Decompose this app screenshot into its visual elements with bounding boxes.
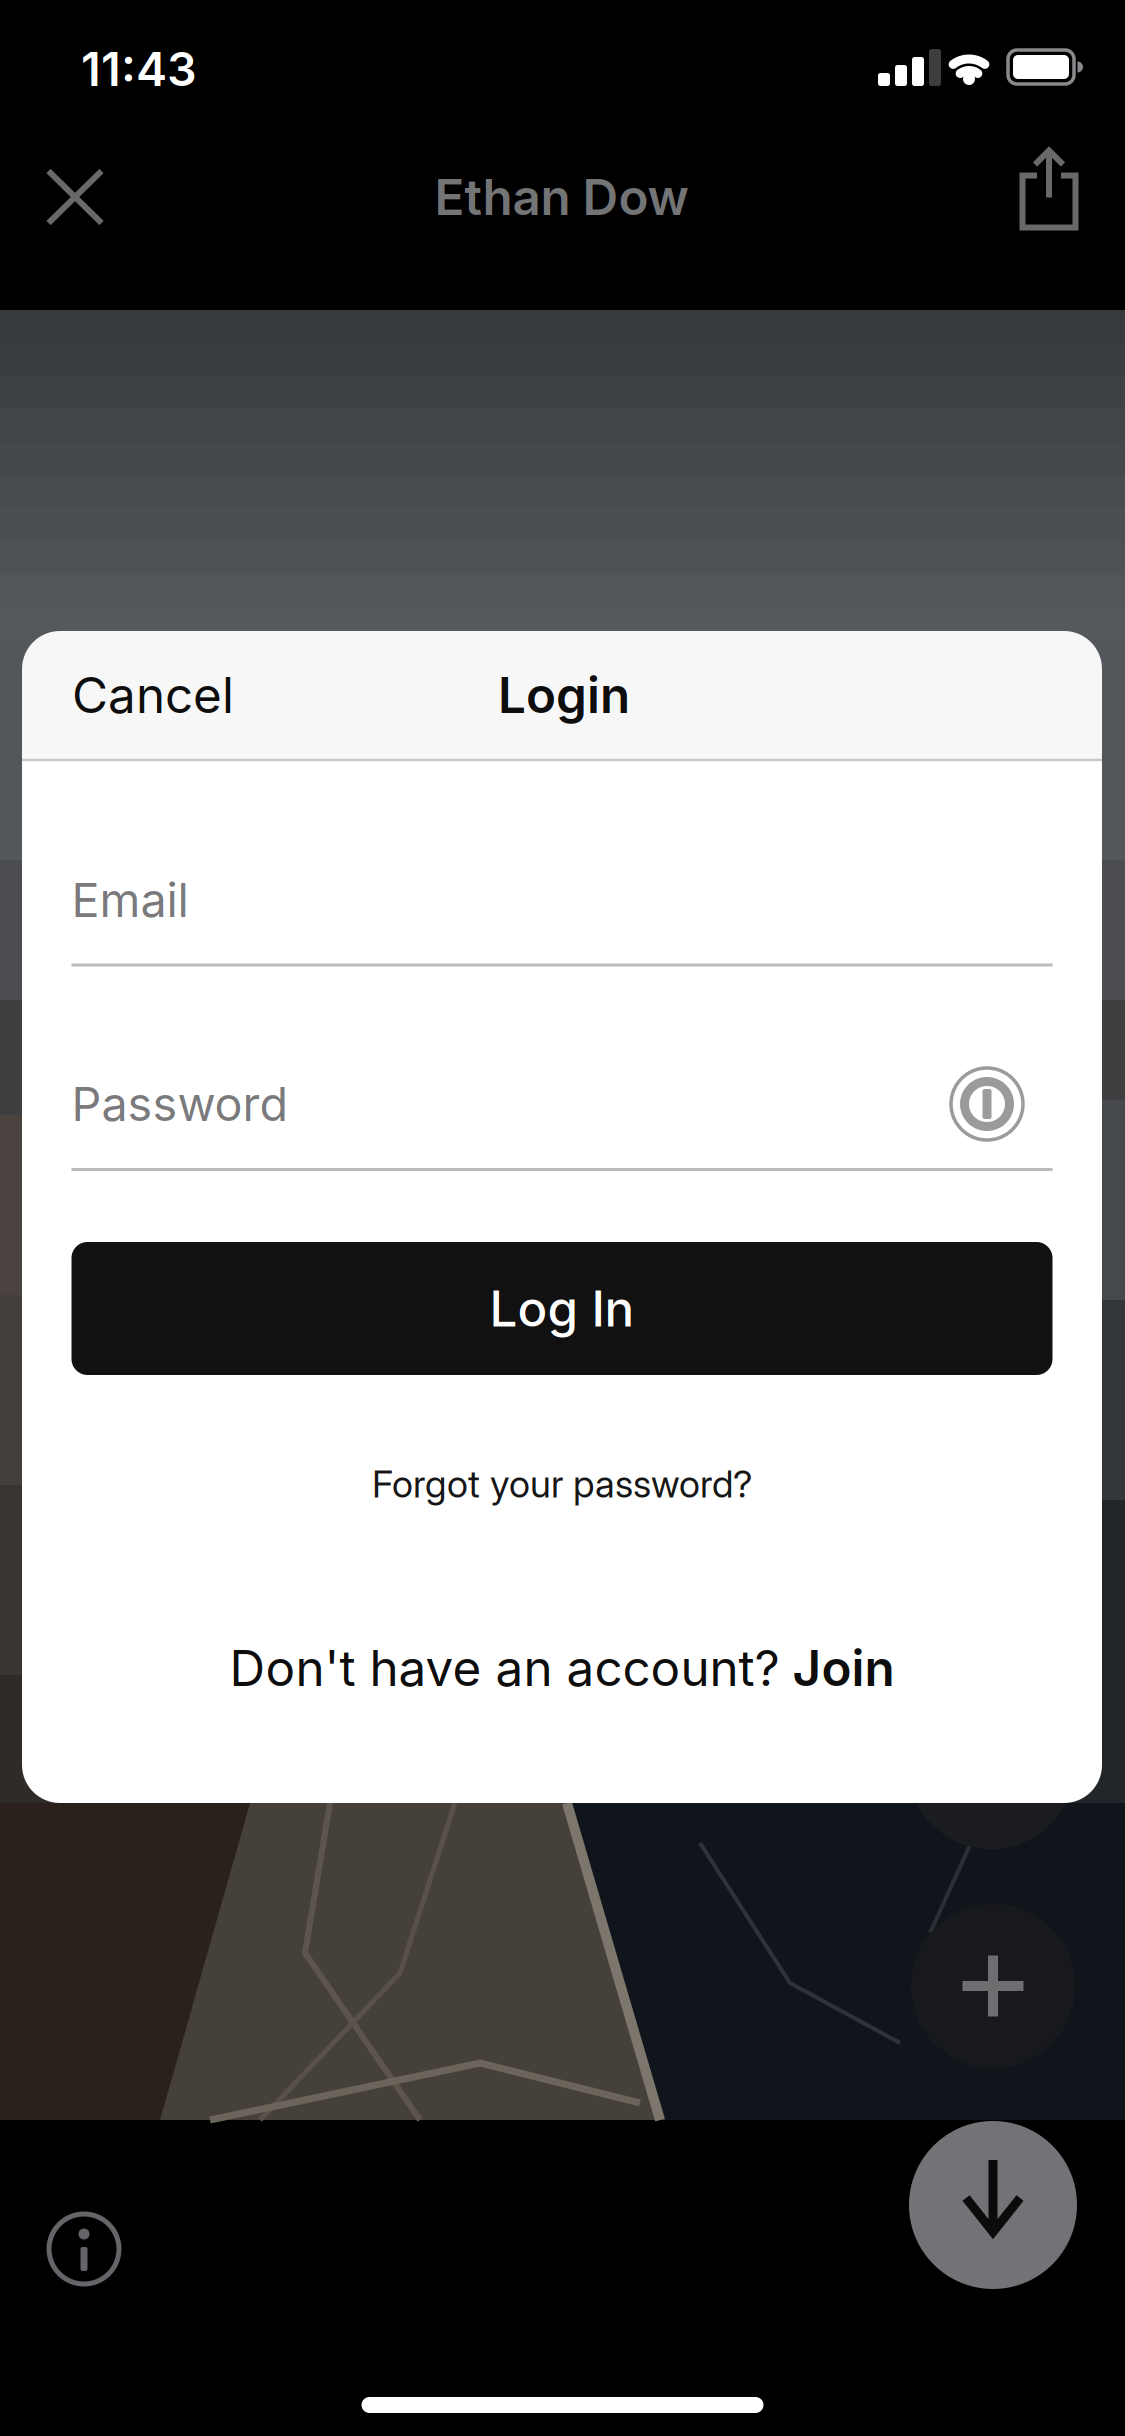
button[interactable]: Share [1022,148,1075,227]
staticText: Login [498,665,630,725]
staticText: Email [71,872,188,928]
button[interactable]: Forgot your password? [372,1461,752,1507]
staticText: Password [71,1076,288,1132]
button[interactable]: Log In [71,1242,1052,1375]
button[interactable]: Don't have an account? [229,1638,894,1698]
button[interactable]: Close [48,171,101,223]
staticText: Join [792,1638,894,1698]
button[interactable]: 1Password [950,1067,1024,1141]
staticText: Don't have an account? [229,1638,779,1698]
staticText: Forgot your password? [372,1461,752,1507]
staticText: Cancel [72,665,234,725]
button[interactable]: Add [911,1904,1075,2068]
staticText: Log In [489,1279,634,1338]
button[interactable]: Info [49,2214,119,2284]
button[interactable]: Download [909,2121,1077,2289]
staticText: Ethan Dow [434,167,688,227]
button[interactable]: Cancel [72,665,234,725]
staticText: 11:43 [81,41,197,97]
